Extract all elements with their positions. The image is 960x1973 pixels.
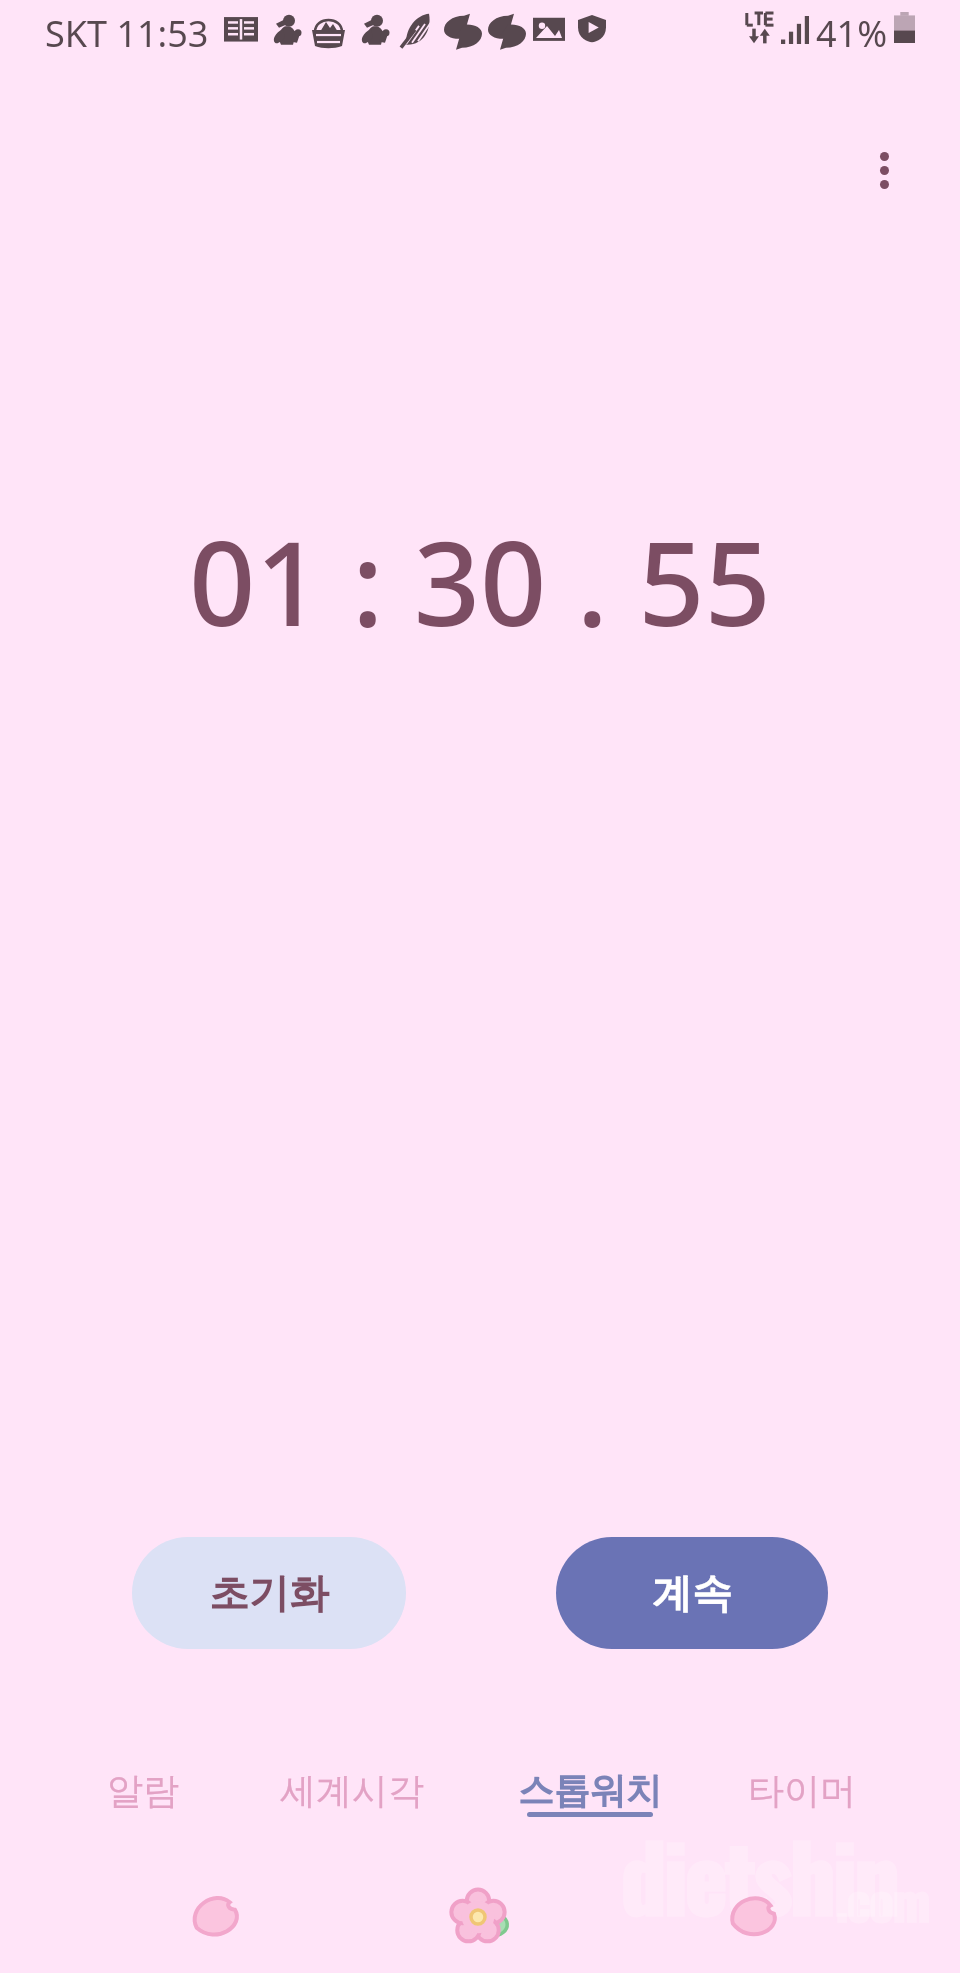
staticText: SKT 11:53 xyxy=(45,9,209,58)
button[interactable]: 스톱워치 xyxy=(490,1764,690,1840)
button[interactable]: More options xyxy=(846,132,922,208)
staticText: 초기화 xyxy=(209,1568,329,1618)
staticText: 스톱워치 xyxy=(518,1768,662,1813)
staticText: 01 : 30 . 55 xyxy=(189,502,771,660)
button[interactable]: 계속 xyxy=(556,1537,828,1649)
button[interactable]: 세계시각 xyxy=(252,1764,452,1840)
staticText: 41% xyxy=(816,9,888,58)
staticText: 계속 xyxy=(652,1568,732,1618)
staticText: 세계시각 xyxy=(280,1768,424,1813)
staticText: .com xyxy=(836,1862,930,1936)
staticText: 알람 xyxy=(107,1768,179,1813)
button[interactable]: 타이머 xyxy=(702,1764,902,1840)
staticText: dietshin xyxy=(621,1808,898,1941)
staticText: 타이머 xyxy=(748,1768,856,1813)
button[interactable]: 초기화 xyxy=(132,1537,406,1649)
button[interactable]: 알람 xyxy=(43,1764,243,1840)
